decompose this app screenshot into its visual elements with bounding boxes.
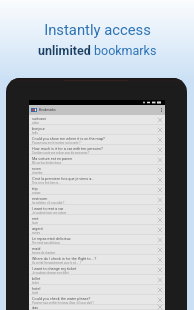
staticText: Could you show me where it is on the map…	[32, 136, 105, 140]
staticText: Combien coute une voiture pour dix perso…	[32, 151, 90, 154]
staticText: Je voudrais louer une voiture	[32, 211, 67, 214]
staticText: The meal was delicious	[32, 241, 60, 244]
button[interactable]: trip	[29, 185, 165, 194]
staticText: rent	[32, 216, 39, 220]
button[interactable]: restroom	[29, 195, 165, 204]
button[interactable]: Remove bookmark	[154, 265, 165, 274]
staticText: trip	[32, 186, 38, 190]
button[interactable]: Ma voiture est en panne	[29, 155, 165, 164]
button[interactable]: suitcase	[29, 115, 165, 124]
staticText: Bookmarks	[39, 108, 56, 112]
button[interactable]: Remove bookmark	[154, 175, 165, 184]
staticText: Could you check the water please?	[32, 296, 91, 300]
button[interactable]: Remove bookmark	[154, 215, 165, 224]
staticText: I want to rent a car	[32, 206, 64, 210]
staticText: day	[32, 305, 38, 309]
staticText: unlimited	[38, 43, 94, 58]
staticText: My car has broken down	[32, 161, 62, 164]
staticText: Pouvez-vous me le montrer sur la carte ?	[32, 141, 81, 144]
staticText: Instantly access	[44, 21, 151, 38]
staticText: femme de chambre	[32, 251, 56, 254]
button[interactable]: Remove bookmark	[154, 135, 165, 144]
staticText: Where do I check in for the flight to ..…	[32, 256, 97, 260]
staticText: C'est la premiere fois que je viens a...	[32, 176, 95, 180]
staticText: Le repas etait delicieux	[32, 236, 71, 240]
staticText: voyage	[32, 191, 41, 194]
button[interactable]: billet	[29, 275, 165, 284]
staticText: louer	[32, 221, 39, 224]
staticText: les toilettes, s'il vous plait ?	[32, 201, 65, 204]
button[interactable]: Remove bookmark	[154, 125, 165, 134]
staticText: restroom	[32, 196, 48, 200]
button[interactable]: I want to change my ticket	[29, 265, 165, 274]
staticText: chambre	[32, 171, 43, 174]
staticText: hotel	[32, 291, 38, 294]
staticText: suitcase	[32, 116, 47, 120]
button[interactable]: day	[29, 305, 165, 309]
staticText: Ma voiture est en panne	[32, 156, 73, 160]
staticText: How much is it for a car with ten person…	[32, 146, 103, 150]
button[interactable]: Remove bookmark	[154, 195, 165, 204]
staticText: room	[32, 166, 41, 170]
button[interactable]: I want to rent a car	[29, 205, 165, 214]
staticText: This is my first time in...	[32, 181, 61, 184]
button[interactable]: Remove bookmark	[154, 285, 165, 294]
staticText: maid	[32, 246, 41, 250]
button[interactable]: Remove bookmark	[154, 245, 165, 254]
button[interactable]: Could you show me where it is on the map…	[29, 135, 165, 144]
button[interactable]: Could you check the water please?	[29, 295, 165, 304]
staticText: bonjour	[32, 126, 45, 130]
button[interactable]: Remove bookmark	[154, 205, 165, 214]
button[interactable]: More options	[158, 106, 165, 114]
button[interactable]: rent	[29, 215, 165, 224]
button[interactable]: Remove bookmark	[154, 185, 165, 194]
button[interactable]: Remove bookmark	[154, 155, 165, 164]
button[interactable]: Remove bookmark	[154, 255, 165, 264]
button[interactable]: Remove bookmark	[154, 275, 165, 284]
button[interactable]: Remove bookmark	[154, 225, 165, 234]
staticText: hotel	[32, 286, 41, 290]
staticText: billet	[32, 276, 41, 280]
button[interactable]: room	[29, 165, 165, 174]
button[interactable]: Remove bookmark	[154, 235, 165, 244]
button[interactable]: How much is it for a car with ten person…	[29, 145, 165, 154]
staticText: I want to change my ticket	[32, 266, 77, 270]
staticText: valise	[32, 121, 39, 124]
button[interactable]: hotel	[29, 285, 165, 294]
staticText: bookmarks	[94, 43, 157, 58]
button[interactable]: Le repas etait delicieux	[29, 235, 165, 244]
button[interactable]: Remove bookmark	[154, 295, 165, 304]
button[interactable]: Remove bookmark	[154, 165, 165, 174]
staticText: Je voudrais changer mon billet	[32, 271, 69, 274]
staticText: argent	[32, 226, 43, 230]
button[interactable]: Remove bookmark	[154, 145, 165, 154]
button[interactable]: maid	[29, 245, 165, 254]
staticText: money	[32, 231, 41, 234]
button[interactable]: argent	[29, 225, 165, 234]
staticText: hello	[32, 131, 38, 134]
button[interactable]: Remove bookmark	[154, 305, 165, 309]
button[interactable]: Remove bookmark	[154, 115, 165, 124]
staticText: Ou se fait l'enregistrement pour le vol …	[32, 261, 81, 264]
button[interactable]: Where do I check in for the flight to ..…	[29, 255, 165, 264]
staticText: ticket	[32, 281, 39, 284]
button[interactable]: C'est la premiere fois que je viens a...	[29, 175, 165, 184]
staticText: Pourriez-vous verifier le niveau d'eau, …	[32, 301, 94, 304]
button[interactable]: bonjour	[29, 125, 165, 134]
